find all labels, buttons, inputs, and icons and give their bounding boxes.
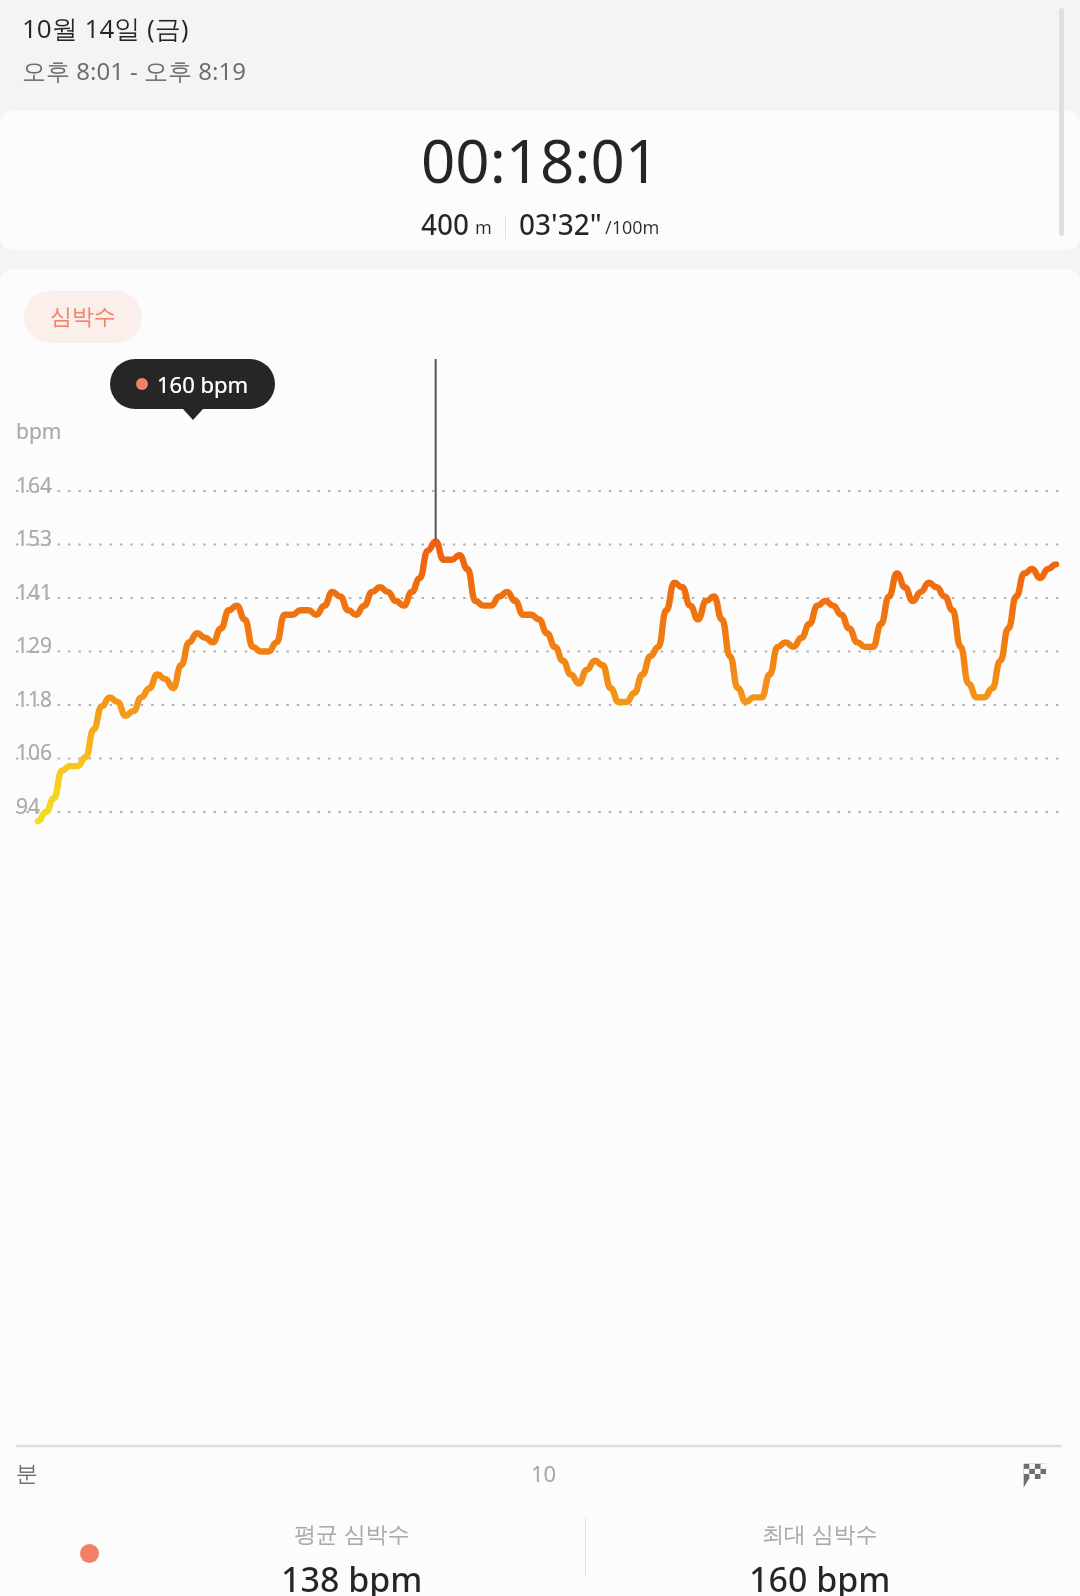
staticText: bpm [16,417,62,446]
button[interactable]: Finish [1016,1458,1048,1490]
staticText: 153 [16,524,53,553]
staticText: 10 [531,1458,557,1488]
staticText: /100m [605,215,660,240]
button[interactable]: 최대 심박수 [586,1492,1054,1596]
staticText: 03'32" [519,205,602,243]
staticText: 00:18:01 [421,119,660,201]
staticText: 400 [421,205,470,243]
button[interactable]: 00:18:01 [0,111,1080,250]
button[interactable]: 심박수 [24,291,142,343]
staticText: 최대 심박수 [762,1518,878,1548]
staticText: 106 [16,738,53,767]
staticText: 10월 14일 (금) [22,10,189,46]
staticText: 심박수 [50,303,116,331]
button[interactable]: 평균 심박수 [118,1492,585,1596]
staticText: 분 [16,1460,38,1488]
staticText: 평균 심박수 [294,1518,410,1548]
staticText: 129 [16,631,53,660]
staticText: 164 [16,471,53,500]
staticText: 160 bpm [157,369,249,399]
staticText: 94 [16,792,41,821]
staticText: 160 bpm [749,1556,891,1596]
staticText: 오후 8:01 - 오후 8:19 [22,54,246,87]
staticText: 141 [16,578,53,607]
staticText: 138 bpm [281,1556,423,1596]
button[interactable]: 160 bpm [110,359,275,409]
staticText: 118 [16,685,53,714]
staticText: m [475,215,492,240]
